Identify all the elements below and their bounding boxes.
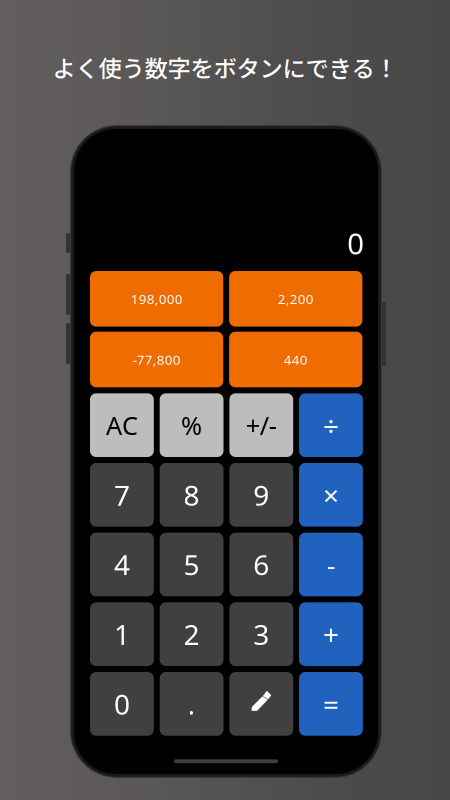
button[interactable]: 5 xyxy=(160,533,223,596)
staticText: 0 xyxy=(114,685,130,722)
button[interactable]: × xyxy=(299,463,363,527)
staticText: - xyxy=(326,546,335,583)
button[interactable]: = xyxy=(299,672,363,736)
staticText: 0 xyxy=(347,223,364,262)
staticText: ÷ xyxy=(323,407,339,444)
staticText: 440 xyxy=(284,351,308,368)
staticText: 9 xyxy=(253,476,269,513)
button[interactable]: 440 xyxy=(229,332,362,387)
button[interactable]: 2 xyxy=(160,602,223,666)
staticText: 3 xyxy=(253,616,269,653)
staticText: 4 xyxy=(114,546,130,583)
button[interactable]: Edit memory buttons xyxy=(229,672,293,736)
button[interactable]: 4 xyxy=(90,533,154,596)
button[interactable]: 9 xyxy=(229,463,293,527)
button[interactable]: 198,000 xyxy=(90,271,223,327)
staticText: AC xyxy=(106,408,138,442)
button[interactable]: 8 xyxy=(160,463,223,527)
staticText: よく使う数字をボタンにできる！ xyxy=(52,50,397,84)
staticText: 198,000 xyxy=(131,290,183,308)
staticText: + xyxy=(323,616,339,653)
staticText: 7 xyxy=(114,476,130,513)
button[interactable]: ÷ xyxy=(299,393,363,457)
button[interactable]: 0 xyxy=(90,672,154,736)
staticText: % xyxy=(181,408,202,442)
staticText: +/- xyxy=(246,408,277,442)
staticText: 2,200 xyxy=(278,290,314,308)
button[interactable]: 6 xyxy=(229,533,293,596)
staticText: -77,800 xyxy=(133,351,181,368)
staticText: = xyxy=(323,685,339,722)
staticText: 2 xyxy=(184,616,200,653)
staticText: × xyxy=(323,476,339,513)
button[interactable]: -77,800 xyxy=(90,332,223,387)
staticText: 8 xyxy=(184,476,200,513)
staticText: 5 xyxy=(184,546,200,583)
button[interactable]: +/- xyxy=(229,393,293,457)
button[interactable]: 7 xyxy=(90,463,154,527)
button[interactable]: + xyxy=(299,602,363,666)
button[interactable]: 1 xyxy=(90,602,154,666)
button[interactable]: 2,200 xyxy=(229,271,362,327)
button[interactable]: % xyxy=(160,393,223,457)
button[interactable]: 3 xyxy=(229,602,293,666)
button[interactable]: . xyxy=(160,672,223,736)
staticText: 6 xyxy=(253,546,269,583)
button[interactable]: - xyxy=(299,533,363,596)
button[interactable]: AC xyxy=(90,393,154,457)
staticText: . xyxy=(188,685,196,722)
staticText: 1 xyxy=(114,616,130,653)
